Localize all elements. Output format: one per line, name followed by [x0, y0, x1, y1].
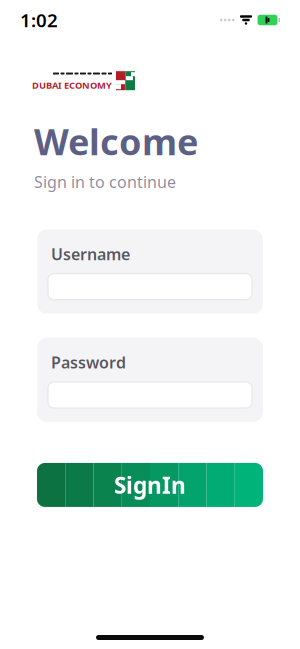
staticText: Password — [51, 352, 126, 373]
staticText: DUBAI ECONOMY — [32, 79, 112, 91]
staticText: Sign in to continue — [34, 171, 176, 192]
staticText: Username — [51, 243, 130, 265]
staticText: Welcome — [34, 117, 198, 165]
button[interactable]: SignIn — [37, 463, 263, 507]
staticText: 1:02 — [20, 8, 58, 32]
staticText: SignIn — [114, 470, 186, 500]
